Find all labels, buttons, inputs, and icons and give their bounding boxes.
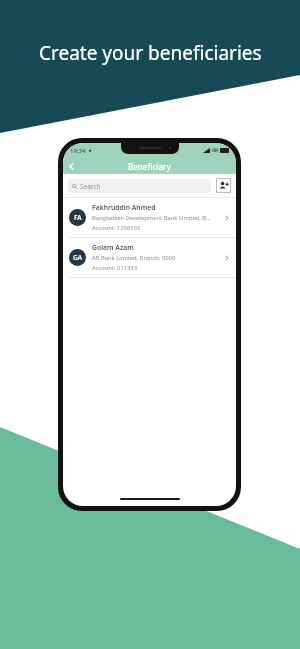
staticText: FA	[74, 213, 82, 222]
staticText: Create your beneficiaries	[39, 40, 262, 66]
button[interactable]: GA	[63, 238, 236, 277]
staticText: Golam Azam	[92, 243, 134, 252]
staticText: GA	[73, 253, 82, 262]
button[interactable]: Back	[63, 158, 79, 174]
staticText: Account: 011333	[92, 264, 137, 272]
staticText: AB Bank Limited, Branch: 0000	[92, 254, 176, 262]
button[interactable]: FA	[63, 198, 236, 237]
staticText: Fakhruddin Ahmed	[92, 203, 156, 212]
staticText: Bangladesh Development Bank Limited, B…	[92, 214, 211, 222]
staticText: Account: 1256555	[92, 224, 141, 232]
staticText: 19:34	[70, 147, 86, 155]
button[interactable]: Add beneficiary	[216, 178, 231, 193]
staticText: Search	[80, 182, 101, 191]
staticText: Beneficiary	[128, 161, 171, 172]
button[interactable]: Search	[68, 179, 211, 193]
